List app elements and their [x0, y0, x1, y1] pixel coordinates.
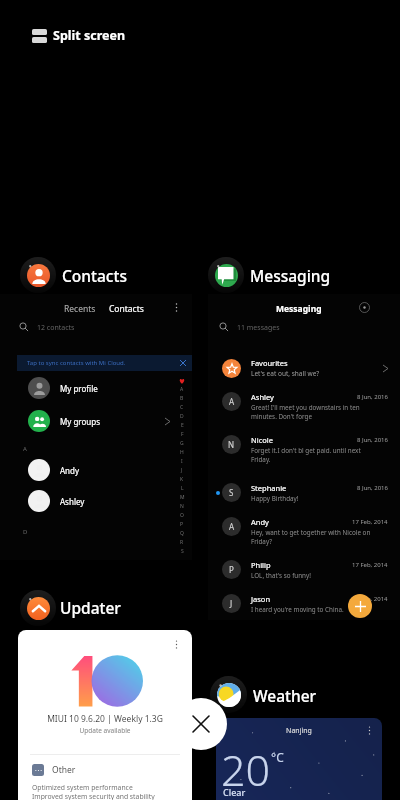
button[interactable]: Updater	[60, 597, 121, 618]
staticText: Forget it.I don't bl get paid. until nex…	[251, 446, 374, 464]
staticText: J	[230, 598, 233, 609]
staticText: 17 Feb, 2014	[352, 595, 388, 603]
staticText: Ashley	[251, 392, 274, 402]
staticText: R	[180, 539, 184, 546]
button[interactable]: J	[213, 594, 388, 624]
staticText: Improved system security and stability	[32, 792, 155, 800]
staticText: Favourites	[251, 358, 288, 368]
staticText: Stephanie	[251, 483, 287, 493]
staticText: Ashley	[60, 496, 85, 507]
button[interactable]: Recents	[64, 303, 96, 315]
button[interactable]: Andy	[28, 457, 170, 483]
staticText: P	[180, 521, 184, 528]
staticText: G	[180, 440, 184, 447]
button[interactable]: Split screen	[32, 27, 126, 44]
button[interactable]: Messaging	[276, 303, 322, 315]
staticText: Update available	[18, 726, 192, 735]
button[interactable]: A	[213, 392, 388, 422]
button[interactable]: S	[213, 483, 388, 513]
staticText: Clear	[223, 786, 246, 798]
staticText: Split screen	[53, 27, 126, 44]
staticText: Andy	[251, 517, 269, 527]
staticText: O	[180, 512, 184, 519]
staticText: H	[180, 449, 184, 456]
staticText: My groups	[60, 416, 101, 427]
button[interactable]: My profile	[28, 375, 170, 401]
staticText: S	[229, 487, 234, 498]
staticText: Optimized system performance	[32, 783, 133, 792]
staticText: C	[180, 404, 184, 411]
button[interactable]: Settings	[356, 299, 372, 315]
button[interactable]: A	[213, 517, 388, 547]
staticText: A	[180, 386, 184, 393]
button[interactable]: Favourites	[222, 355, 388, 381]
staticText: D	[180, 413, 184, 420]
staticText: Let's eat out, shall we?	[251, 369, 320, 378]
staticText: Hey, want to get together with Nicole on…	[251, 528, 374, 546]
staticText: A	[229, 396, 235, 407]
staticText: 11 messages	[237, 323, 280, 333]
button[interactable]: Dismiss	[178, 358, 188, 368]
staticText: Nanjing	[216, 726, 382, 736]
staticText: °C	[271, 749, 284, 765]
staticText: P	[229, 564, 234, 575]
staticText: K	[180, 476, 184, 483]
staticText: J	[181, 467, 183, 474]
button[interactable]: Contacts	[62, 265, 127, 286]
staticText: MIUI 10 9.6.20 | Weekly 1.3G	[18, 713, 192, 725]
button[interactable]: N	[213, 435, 388, 465]
staticText: S	[181, 548, 184, 555]
staticText: 8 Jun, 2016	[357, 484, 388, 492]
button[interactable]: More options	[168, 299, 184, 315]
staticText: I heard you're moving to China.	[251, 605, 344, 614]
button[interactable]: My groups	[28, 408, 170, 434]
staticText: Other	[52, 764, 76, 776]
staticText: 20	[221, 740, 271, 799]
button[interactable]: Weather	[253, 685, 317, 706]
staticText: N	[180, 503, 184, 510]
staticText: Happy Birthday!	[251, 494, 299, 503]
staticText: Tap to sync contacts with Mi Cloud.	[27, 359, 126, 367]
button[interactable]: Tap to sync contacts with Mi Cloud.	[17, 355, 192, 371]
button[interactable]: Close	[175, 698, 227, 750]
button[interactable]: Contacts	[109, 303, 144, 315]
staticText: 17 Feb, 2014	[352, 561, 388, 569]
staticText: Andy	[60, 465, 80, 476]
staticText: Great! I'll meet you downstairs in ten m…	[251, 403, 374, 421]
staticText: E	[181, 422, 184, 429]
staticText: Jason	[251, 594, 271, 604]
staticText: My profile	[60, 383, 98, 394]
staticText: 8 Jun, 2016	[357, 393, 388, 401]
staticText: I	[181, 458, 183, 465]
staticText: D	[23, 528, 28, 536]
button[interactable]: More options	[364, 725, 375, 736]
staticText: Nicole	[251, 435, 273, 445]
staticText: LOL, that's so funny!	[251, 571, 311, 580]
staticText: N	[228, 439, 235, 450]
staticText: F	[181, 431, 184, 438]
button[interactable]: P	[213, 560, 388, 590]
staticText: A	[229, 521, 235, 532]
staticText: 8 Jun, 2016	[357, 436, 388, 444]
staticText: 17 Feb, 2014	[352, 518, 388, 526]
button[interactable]: New message	[348, 594, 372, 618]
button[interactable]: Messaging	[250, 265, 331, 286]
staticText: Q	[180, 530, 184, 537]
staticText: L	[181, 485, 184, 492]
staticText: B	[180, 395, 184, 402]
staticText: Philip	[251, 560, 271, 570]
button[interactable]: More options	[170, 638, 182, 650]
staticText: M	[180, 494, 185, 501]
button[interactable]: Ashley	[28, 488, 170, 514]
staticText: A	[23, 445, 27, 453]
staticText: 12 contacts	[37, 323, 75, 333]
